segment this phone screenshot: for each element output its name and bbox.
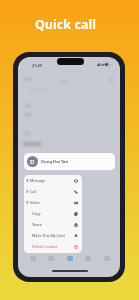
button[interactable]: Keypad	[83, 254, 92, 263]
button[interactable]: Message	[24, 175, 82, 186]
button[interactable]: Make This My Card	[24, 230, 82, 241]
button[interactable]: Copy	[24, 208, 82, 219]
staticText: Delete Contact	[32, 244, 58, 249]
staticText: D	[30, 158, 35, 166]
button[interactable]: Video	[24, 197, 82, 208]
staticText: Video	[30, 200, 40, 205]
button[interactable]: Delete Contact	[24, 241, 82, 252]
staticText: Quick call	[0, 16, 135, 33]
staticText: Message	[30, 178, 46, 183]
button[interactable]: Call	[24, 186, 82, 197]
staticText: Make This My Card	[32, 233, 65, 238]
button[interactable]: Voicemail	[102, 254, 111, 263]
button[interactable]: Lists	[28, 254, 37, 263]
button[interactable]: Recents	[46, 254, 55, 263]
button[interactable]: D	[24, 153, 115, 170]
button[interactable]: Share	[24, 219, 82, 230]
staticText: Share	[32, 222, 42, 227]
staticText: Copy	[32, 211, 41, 216]
staticText: Dung Dai Tan	[41, 159, 69, 165]
staticText: Call	[30, 189, 37, 194]
button[interactable]: Contacts	[65, 254, 74, 263]
staticText: 21:40	[32, 63, 42, 68]
